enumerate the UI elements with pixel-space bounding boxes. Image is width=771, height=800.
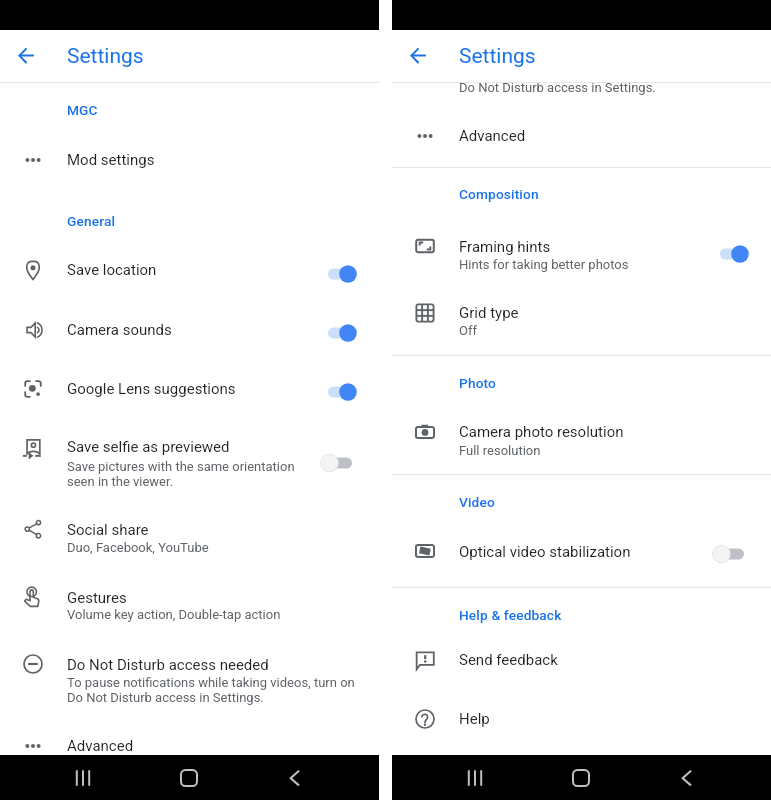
button[interactable]: Back xyxy=(6,42,34,70)
staticText: MGC xyxy=(67,102,98,118)
staticText: To pause notifications while taking vide… xyxy=(67,675,355,705)
staticText: Camera photo resolution xyxy=(459,423,624,441)
button[interactable]: Google Lens suggestions xyxy=(0,358,379,418)
button[interactable]: Camera sounds xyxy=(0,299,379,358)
button[interactable]: Recent apps xyxy=(67,762,99,794)
staticText: Do Not Disturb access in Settings. xyxy=(459,82,656,95)
button[interactable]: Save location xyxy=(0,240,379,299)
button[interactable]: Back xyxy=(398,42,426,70)
button[interactable]: Navigate back xyxy=(670,762,702,794)
staticText: Settings xyxy=(67,44,144,69)
button[interactable]: Camera sounds toggle xyxy=(320,315,368,351)
staticText: Advanced xyxy=(67,737,134,755)
staticText: Do Not Disturb access needed xyxy=(67,656,269,674)
staticText: Framing hints xyxy=(459,238,551,256)
staticText: Send feedback xyxy=(459,651,558,669)
staticText: Advanced xyxy=(459,127,526,145)
button[interactable]: Recent apps xyxy=(459,762,491,794)
staticText: Grid type xyxy=(459,304,519,322)
button[interactable]: Save selfie as previewed xyxy=(0,420,379,495)
button[interactable]: Camera photo resolution xyxy=(392,406,771,468)
button[interactable]: Send feedback xyxy=(392,636,771,692)
button[interactable]: Do Not Disturb access needed xyxy=(0,637,379,715)
staticText: Gestures xyxy=(67,589,127,607)
button[interactable]: Help xyxy=(392,694,771,750)
staticText: Hints for taking better photos xyxy=(459,257,629,272)
button[interactable]: Navigate back xyxy=(278,762,310,794)
button[interactable]: Home xyxy=(173,762,205,794)
button[interactable]: Save selfie as previewed toggle xyxy=(320,445,368,481)
button[interactable]: Framing hints xyxy=(392,220,771,284)
button[interactable]: Optical video stabilization toggle xyxy=(712,536,760,572)
staticText: Full resolution xyxy=(459,443,541,458)
staticText: Save selfie as previewed xyxy=(67,438,230,456)
staticText: Help xyxy=(459,710,490,728)
button[interactable]: Grid type xyxy=(392,288,771,350)
button[interactable]: Social share xyxy=(0,503,379,565)
staticText: Settings xyxy=(459,44,536,69)
button[interactable]: Framing hints toggle xyxy=(712,236,760,272)
button[interactable]: Advanced xyxy=(392,110,771,160)
button[interactable]: Optical video stabilization xyxy=(392,523,771,577)
staticText: Google Lens suggestions xyxy=(67,380,236,398)
button[interactable]: Advanced xyxy=(0,722,379,755)
staticText: Camera sounds xyxy=(67,321,172,339)
staticText: Optical video stabilization xyxy=(459,543,631,561)
staticText: Mod settings xyxy=(67,151,155,169)
button[interactable]: Gestures xyxy=(0,571,379,633)
staticText: Composition xyxy=(459,186,539,202)
staticText: Duo, Facebook, YouTube xyxy=(67,540,209,555)
button[interactable]: Mod settings xyxy=(0,130,379,190)
staticText: Photo xyxy=(459,375,497,391)
staticText: General xyxy=(67,213,116,229)
staticText: Video xyxy=(459,494,495,510)
staticText: Save location xyxy=(67,261,157,279)
staticText: Off xyxy=(459,323,477,338)
staticText: Help & feedback xyxy=(459,607,562,623)
button[interactable]: Home xyxy=(565,762,597,794)
staticText: Social share xyxy=(67,521,149,539)
staticText: Volume key action, Double-tap action xyxy=(67,607,281,622)
staticText: Save pictures with the same orientation … xyxy=(67,459,295,489)
button[interactable]: Save location toggle xyxy=(320,256,368,292)
button[interactable]: Google Lens suggestions toggle xyxy=(320,374,368,410)
